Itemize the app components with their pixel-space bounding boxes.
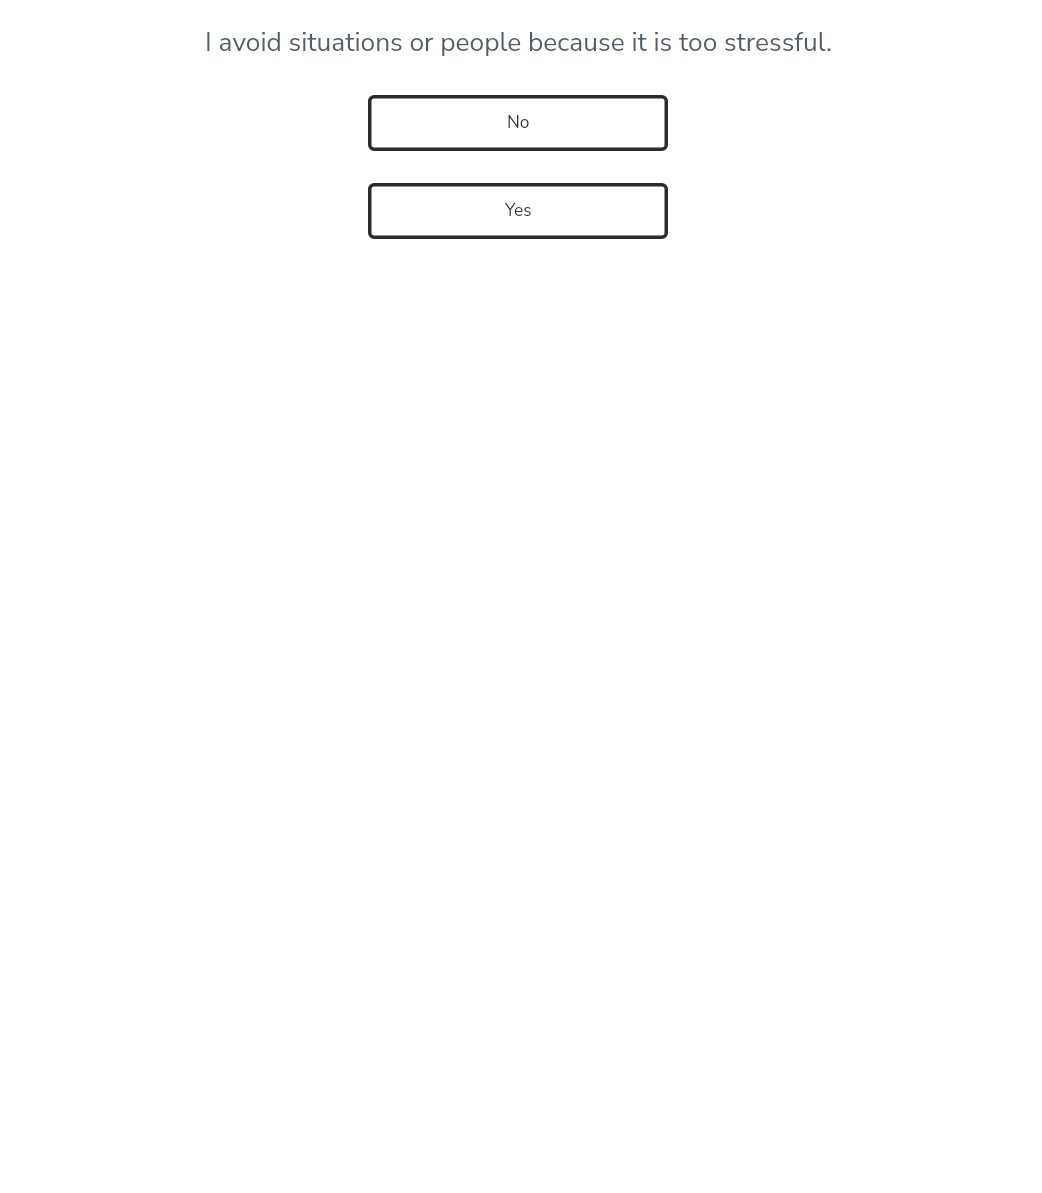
staticText: Yes [505,198,532,222]
button[interactable]: No [368,95,668,151]
button[interactable]: Yes [368,183,668,239]
staticText: I avoid situations or people because it … [205,24,832,60]
staticText: No [507,110,530,134]
